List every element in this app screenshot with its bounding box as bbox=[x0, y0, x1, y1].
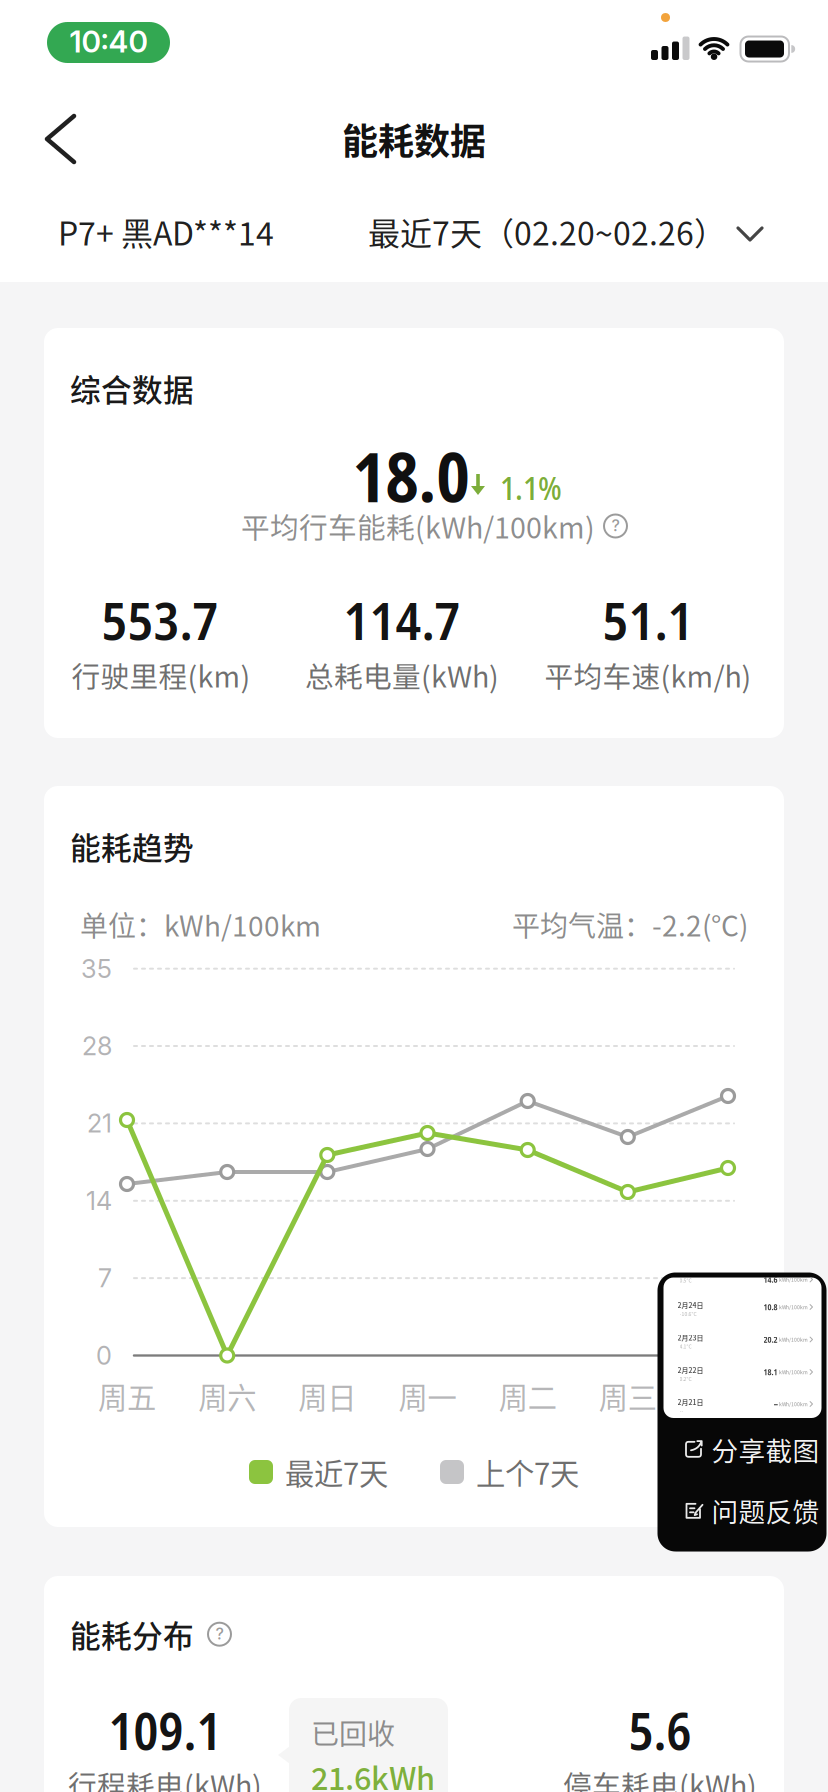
staticText: 总耗电量(kWh) bbox=[305, 654, 499, 696]
staticText: 能耗分布 bbox=[70, 1612, 194, 1656]
staticText: 2月22日 bbox=[677, 1365, 703, 1375]
staticText: P7+ 黑AD***14 bbox=[58, 208, 274, 255]
staticText: 18.0 bbox=[352, 430, 469, 522]
staticText: -- bbox=[773, 1398, 777, 1410]
button[interactable]: 返回 bbox=[19, 101, 103, 177]
staticText: 1.1% bbox=[500, 466, 562, 509]
staticText: kWh/100km bbox=[779, 1276, 808, 1283]
staticText: 平均气温：-2.2(°C) bbox=[512, 904, 748, 944]
staticText: 2月23日 bbox=[677, 1332, 703, 1342]
staticText: 周一 bbox=[398, 1375, 456, 1417]
staticText: kWh/100km bbox=[779, 1303, 808, 1311]
staticText: 周三 bbox=[599, 1375, 657, 1417]
staticText: 51.1 bbox=[602, 584, 693, 655]
staticText: 综合数据 bbox=[70, 366, 194, 410]
staticText: 分享截图 bbox=[711, 1430, 819, 1469]
staticText: 20.2 bbox=[763, 1334, 777, 1345]
staticText: 553.7 bbox=[101, 584, 218, 655]
staticText: 21 bbox=[87, 1108, 112, 1139]
staticText: 平均车速(km/h) bbox=[544, 654, 751, 696]
staticText: 14 bbox=[86, 1185, 112, 1216]
staticText: 5.6 bbox=[628, 1695, 691, 1765]
staticText: 2月24日 bbox=[677, 1300, 703, 1310]
staticText: -- bbox=[679, 1407, 683, 1414]
staticText: ? bbox=[611, 516, 619, 535]
staticText: 单位：kWh/100km bbox=[80, 904, 321, 944]
staticText: 10:40 bbox=[69, 23, 147, 60]
staticText: 问题反馈 bbox=[711, 1491, 819, 1530]
staticText: kWh/100km bbox=[779, 1336, 808, 1343]
staticText: 114.7 bbox=[343, 584, 460, 655]
staticText: 已回收 bbox=[311, 1712, 395, 1752]
staticText: 0.5°C bbox=[679, 1276, 691, 1284]
staticText: 7 bbox=[98, 1263, 112, 1293]
staticText: 周五 bbox=[98, 1375, 156, 1417]
staticText: 能耗数据 bbox=[342, 113, 486, 165]
staticText: 上个7天 bbox=[476, 1451, 579, 1493]
staticText: 行驶里程(km) bbox=[71, 654, 250, 696]
staticText: 能耗趋势 bbox=[70, 824, 194, 868]
staticText: 行程耗电(kWh) bbox=[68, 1763, 262, 1792]
button[interactable]: 分享截图 bbox=[683, 1424, 819, 1475]
staticText: 2月21日 bbox=[677, 1397, 703, 1407]
staticText: ? bbox=[215, 1624, 223, 1643]
staticText: 28 bbox=[82, 1031, 112, 1061]
button[interactable]: 选择时间范围 bbox=[368, 200, 764, 263]
staticText: 35 bbox=[81, 953, 112, 984]
staticText: 0 bbox=[96, 1340, 112, 1371]
staticText: 周四 bbox=[699, 1375, 757, 1417]
staticText: 21.6kWh bbox=[311, 1754, 435, 1792]
staticText: 周六 bbox=[198, 1375, 256, 1417]
staticText: 18.1 bbox=[763, 1366, 777, 1378]
staticText: 最近7天 bbox=[285, 1451, 388, 1493]
staticText: kWh/100km bbox=[779, 1368, 808, 1376]
staticText: 0.2°C bbox=[679, 1375, 691, 1382]
staticText: 10.8 bbox=[763, 1301, 777, 1313]
staticText: 14.6 bbox=[763, 1274, 777, 1285]
staticText: 周日 bbox=[298, 1375, 356, 1417]
button[interactable]: 问题反馈 bbox=[683, 1485, 819, 1536]
button[interactable]: 平均行车能耗说明 bbox=[241, 505, 627, 547]
staticText: 最近7天（02.20~02.26） bbox=[368, 208, 726, 255]
staticText: kWh/100km bbox=[779, 1400, 808, 1408]
button[interactable]: 能耗分布说明 bbox=[208, 1623, 231, 1646]
staticText: -10.6°C bbox=[679, 1310, 696, 1317]
staticText: 4.1°C bbox=[679, 1342, 691, 1350]
staticText: 周二 bbox=[499, 1375, 557, 1417]
staticText: 停车耗电(kWh) bbox=[563, 1763, 757, 1792]
staticText: 109.1 bbox=[108, 1695, 221, 1765]
staticText: 平均行车能耗(kWh/100km) bbox=[241, 505, 595, 547]
